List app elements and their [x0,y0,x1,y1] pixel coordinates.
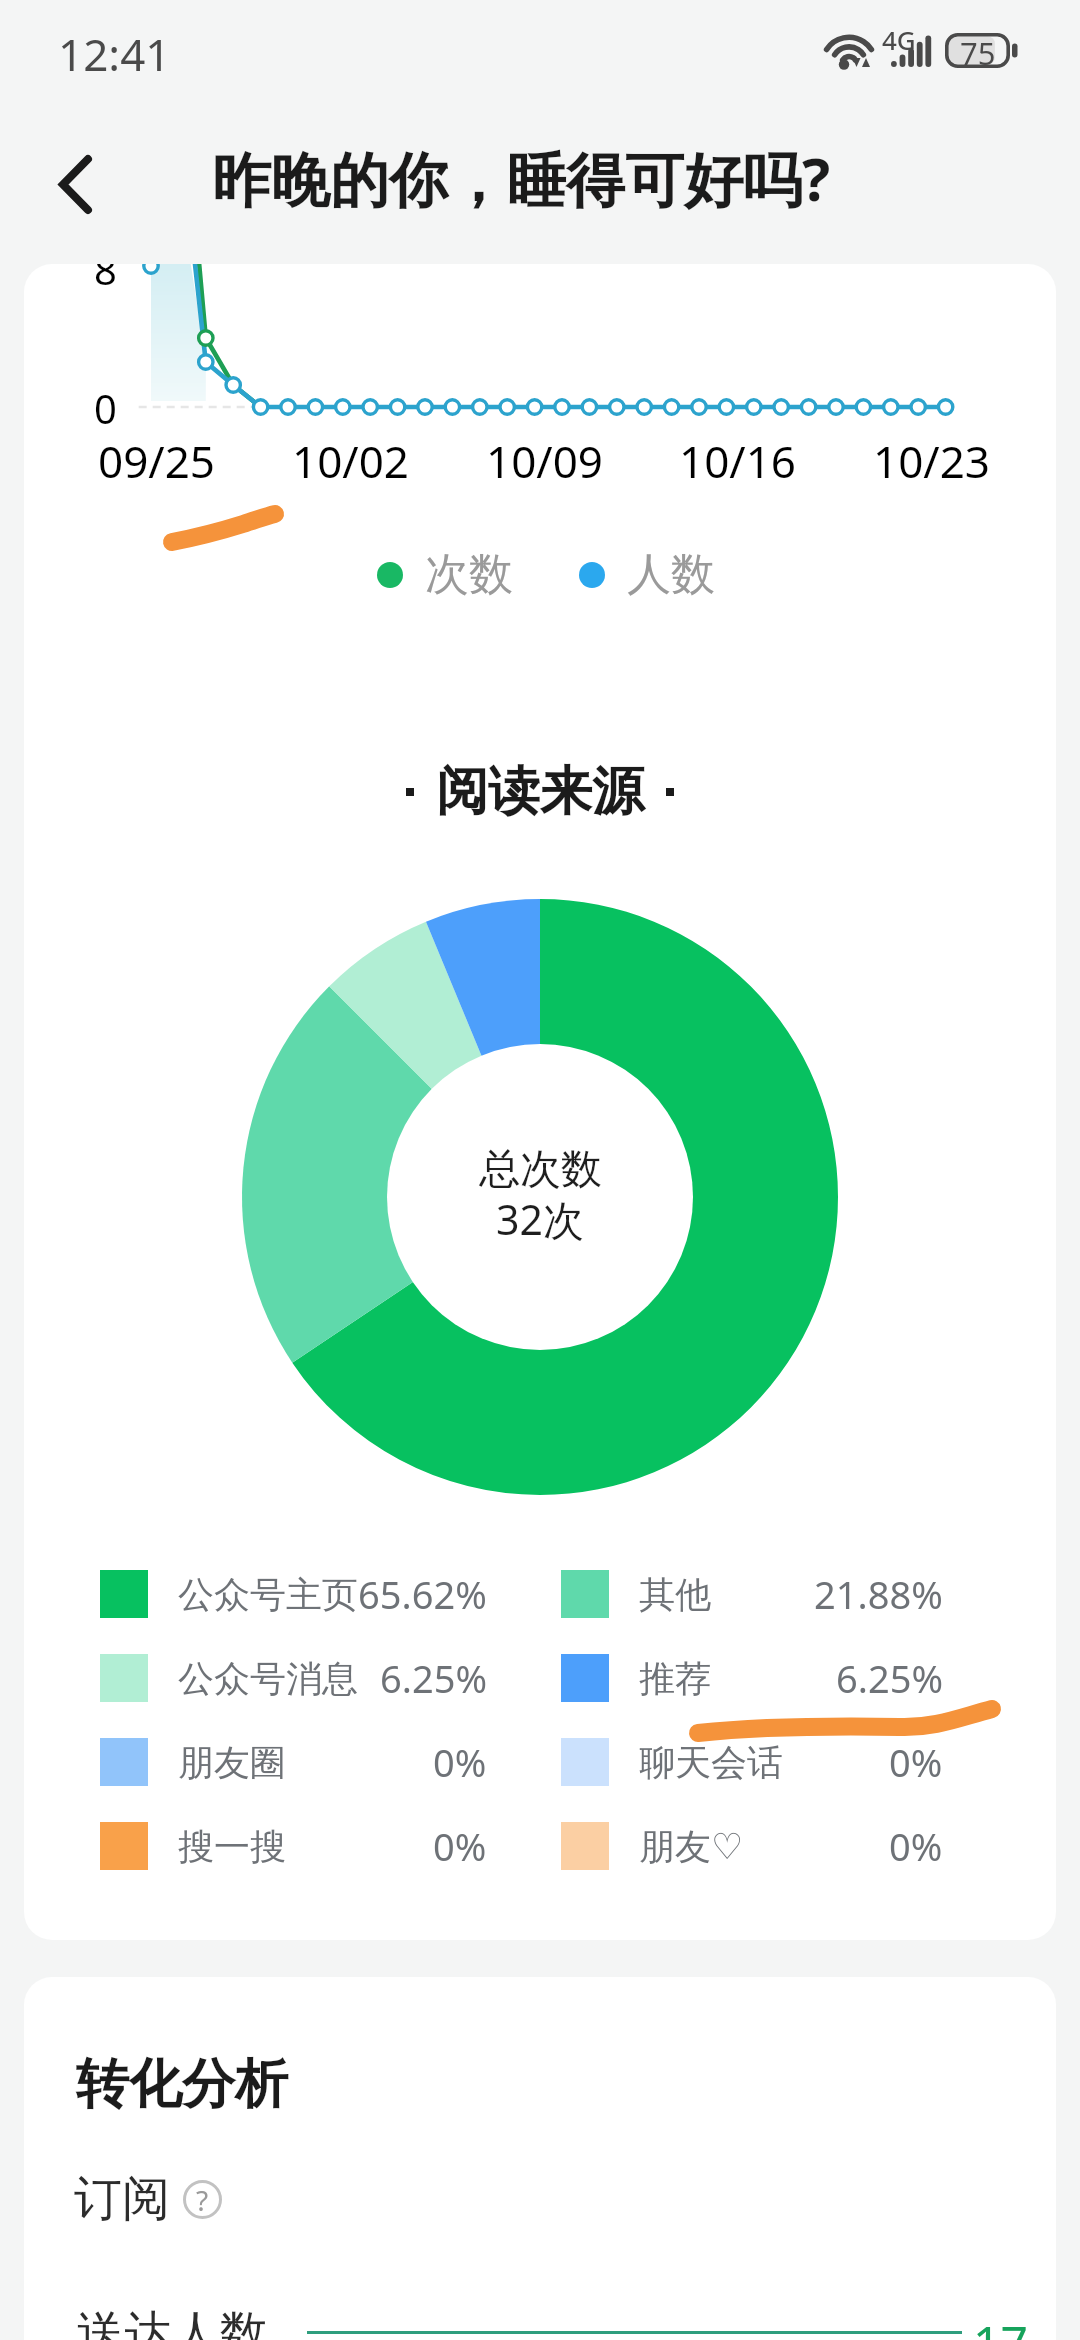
staticText: 6.25% [836,1652,943,1704]
button[interactable]: 朋友圈 [100,1731,487,1793]
staticText: ? [196,2181,209,2219]
button[interactable]: 人数 [579,547,715,602]
staticText: 订阅 [74,2169,170,2229]
button[interactable]: 其他 [561,1563,943,1625]
staticText: 公众号主页 [178,1572,358,1617]
button[interactable]: Back [16,131,136,251]
button[interactable]: 送达人数 [24,2287,1056,2340]
staticText: 阅读来源 [436,759,644,825]
staticText: 0% [889,1736,943,1788]
button[interactable]: Help about subscriptions [183,2180,222,2219]
staticText: 10/16 [679,431,797,491]
staticText: 0 [94,381,117,435]
staticText: 32次 [496,1191,584,1247]
staticText: 送达人数 [76,2304,268,2340]
button[interactable]: 聊天会话 [561,1731,943,1793]
staticText: 搜一搜 [178,1824,286,1869]
staticText: 10/23 [873,431,991,491]
staticText: 0% [433,1820,487,1872]
staticText: 75 [960,32,996,67]
staticText: 8 [94,264,117,296]
button[interactable]: 次数 [377,547,513,602]
button[interactable]: 推荐 [561,1647,943,1709]
staticText: 公众号消息 [178,1656,358,1701]
staticText: 转化分析 [76,2051,288,2118]
staticText: 0% [433,1736,487,1788]
button[interactable]: 搜一搜 [100,1815,487,1877]
staticText: 17 [973,2310,1028,2340]
staticText: 朋友圈 [178,1740,286,1785]
staticText: 总次数 [479,1144,602,1196]
staticText: 0% [889,1820,943,1872]
staticText: 10/02 [292,431,410,491]
staticText: 4G [882,22,916,57]
staticText: 21.88% [814,1568,943,1620]
staticText: 人数 [627,547,715,602]
button[interactable]: 公众号主页 [100,1563,487,1625]
staticText: 65.62% [358,1568,487,1620]
staticText: 聊天会话 [639,1740,783,1785]
staticText: 其他 [639,1572,711,1617]
button[interactable]: 公众号消息 [100,1647,487,1709]
staticText: 次数 [425,547,513,602]
staticText: 昨晚的你，睡得可好吗? [212,138,831,219]
staticText: 推荐 [639,1656,711,1701]
staticText: 6.25% [380,1652,487,1704]
staticText: 10/09 [486,431,604,491]
staticText: 朋友♡ [639,1824,744,1869]
staticText: 12:41 [58,24,171,84]
staticText: 09/25 [98,431,216,491]
button[interactable]: 朋友♡ [561,1815,943,1877]
